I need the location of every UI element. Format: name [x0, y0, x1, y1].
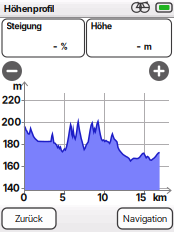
- staticText: Steigung: [6, 21, 41, 31]
- staticText: 15: [136, 191, 146, 204]
- staticText: Zurück: [15, 213, 43, 224]
- staticText: 10: [97, 191, 108, 204]
- staticText: 160: [3, 160, 20, 172]
- staticText: 220: [2, 94, 21, 106]
- staticText: 5: [59, 191, 65, 204]
- staticText: m: [144, 41, 152, 52]
- button[interactable]: Activity: cycling: [0, 0, 19, 11]
- staticText: 180: [3, 138, 20, 150]
- button[interactable]: Zurück: [2, 208, 56, 229]
- button[interactable]: Steigung: [2, 19, 84, 57]
- staticText: Höhe: [91, 21, 112, 31]
- staticText: km: [153, 191, 167, 204]
- button[interactable]: Zoom out: [2, 61, 22, 81]
- button[interactable]: Höhe: [86, 19, 171, 57]
- staticText: -: [53, 40, 57, 53]
- staticText: m: [13, 80, 22, 92]
- button[interactable]: Battery: [0, 0, 18, 9]
- staticText: Höhenprofil: [4, 3, 54, 14]
- staticText: 140: [3, 182, 20, 194]
- staticText: 200: [1, 116, 21, 128]
- staticText: 0: [20, 191, 27, 204]
- button[interactable]: Navigation: [117, 208, 172, 229]
- staticText: Navigation: [123, 213, 167, 224]
- staticText: -: [136, 40, 140, 53]
- staticText: %: [60, 41, 67, 52]
- button[interactable]: Zoom in: [149, 61, 169, 81]
